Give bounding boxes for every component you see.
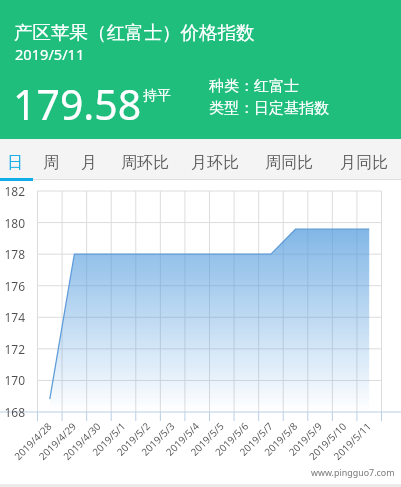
button[interactable]: 月同比: [334, 139, 394, 180]
staticText: 月: [81, 153, 97, 173]
staticText: 种类：红富士: [209, 77, 299, 96]
staticText: 持平: [143, 87, 171, 105]
button[interactable]: 周环比: [115, 139, 175, 180]
staticText: 类型：日定基指数: [209, 99, 329, 118]
staticText: 周: [43, 153, 59, 173]
button[interactable]: 周同比: [259, 139, 319, 180]
staticText: 周环比: [121, 153, 169, 173]
other: 价格指数走势图: [0, 0, 401, 487]
staticText: www.pingguo7.com: [311, 466, 395, 478]
staticText: 产区苹果（红富士）价格指数: [14, 21, 255, 44]
staticText: 日: [7, 153, 23, 173]
staticText: 周同比: [265, 153, 313, 173]
staticText: 月环比: [191, 153, 239, 173]
button[interactable]: 月: [75, 139, 103, 180]
button[interactable]: 月环比: [185, 139, 245, 180]
staticText: 月同比: [340, 153, 388, 173]
staticText: 179.58: [13, 76, 142, 132]
staticText: 2019/5/11: [15, 44, 85, 64]
button[interactable]: 日: [1, 139, 29, 180]
button[interactable]: 周: [37, 139, 65, 180]
